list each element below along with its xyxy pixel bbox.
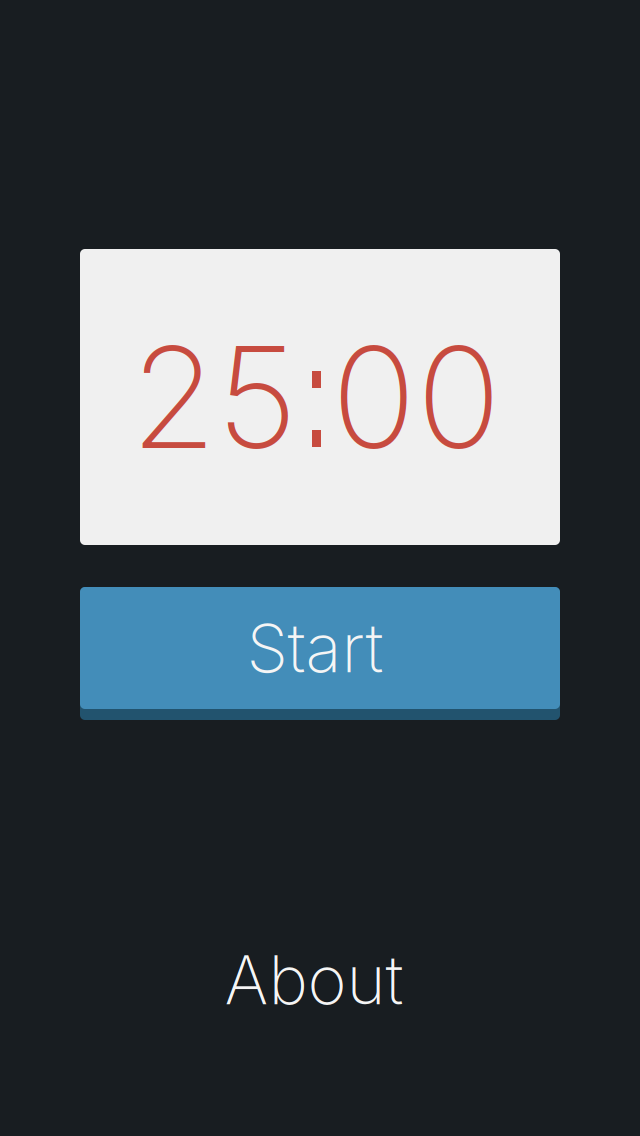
staticText: About — [224, 940, 403, 1020]
staticText: 00 — [331, 312, 501, 482]
button[interactable]: About — [194, 942, 434, 1018]
staticText: Start — [246, 608, 383, 688]
staticText: 25 — [130, 312, 297, 482]
button[interactable]: Start — [80, 587, 560, 720]
group: 25:00 — [80, 249, 560, 545]
